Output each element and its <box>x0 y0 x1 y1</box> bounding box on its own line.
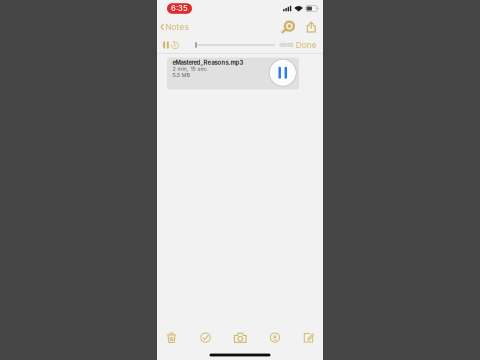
staticText: 5.3 MB <box>172 72 189 78</box>
button[interactable]: Pause audio <box>269 59 296 86</box>
button[interactable]: Delete <box>166 332 177 343</box>
button[interactable]: Markup <box>270 332 280 343</box>
staticText: Notes <box>166 22 189 32</box>
button[interactable]: Notes <box>160 18 193 36</box>
button[interactable]: Camera <box>234 331 246 344</box>
button[interactable]: Markup <box>280 17 297 37</box>
staticText: Done <box>296 40 317 50</box>
button[interactable]: Checklist <box>200 332 211 343</box>
staticText: -00:00 <box>278 42 293 48</box>
button[interactable]: Go back 15 seconds <box>170 38 181 52</box>
button[interactable]: Compose <box>303 332 314 343</box>
button[interactable]: Pause <box>160 38 170 52</box>
staticText: 2 min, 15 sec. <box>172 66 208 72</box>
button[interactable]: Share <box>304 19 318 35</box>
staticText: 15 <box>174 43 177 48</box>
staticText: eMastered_Reasons.mp3 <box>172 59 243 66</box>
staticText: 6:35 <box>171 4 188 13</box>
button[interactable]: Done <box>293 36 317 54</box>
